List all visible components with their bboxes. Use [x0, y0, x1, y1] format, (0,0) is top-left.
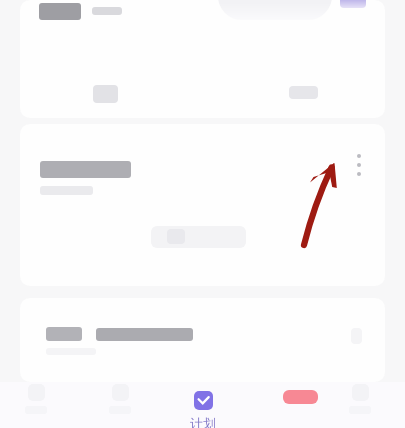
staticText: 计划	[190, 415, 216, 428]
button[interactable]	[20, 298, 385, 382]
button[interactable]: Tab 5	[342, 384, 378, 424]
button[interactable]: Tab 2	[102, 384, 138, 424]
button[interactable]: 计划	[173, 391, 233, 428]
button[interactable]: More options	[349, 154, 369, 180]
button[interactable]: Notifications	[266, 382, 334, 424]
button[interactable]	[20, 0, 385, 118]
button[interactable]: More options	[20, 124, 385, 286]
button[interactable]: Tab 1	[18, 384, 54, 424]
